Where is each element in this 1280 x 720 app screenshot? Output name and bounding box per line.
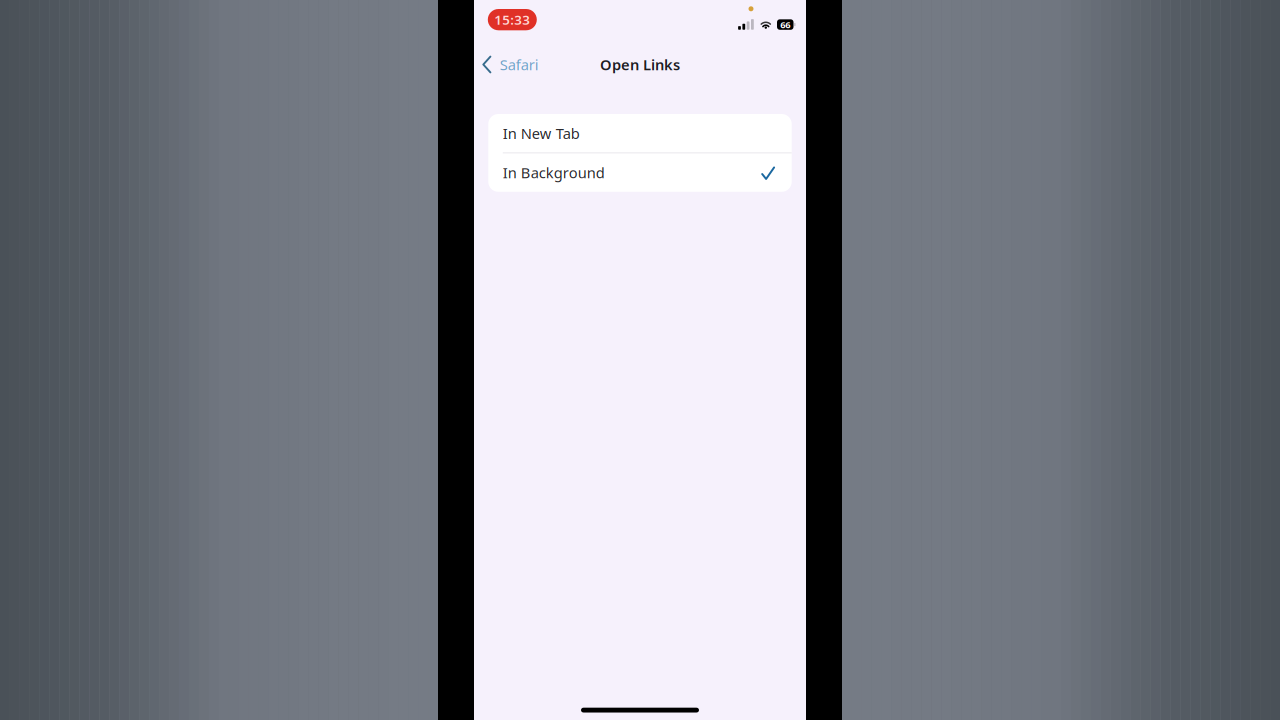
button[interactable]: Back to Safari: [474, 49, 547, 80]
staticText: In New Tab: [503, 123, 580, 143]
staticText: 15:33: [494, 11, 530, 28]
button[interactable]: In New Tab: [488, 114, 792, 152]
staticText: Safari: [500, 55, 539, 74]
staticText: In Background: [503, 163, 605, 182]
staticText: Open Links: [600, 55, 680, 74]
staticText: 66: [780, 18, 790, 31]
button[interactable]: In Background: [488, 153, 792, 192]
